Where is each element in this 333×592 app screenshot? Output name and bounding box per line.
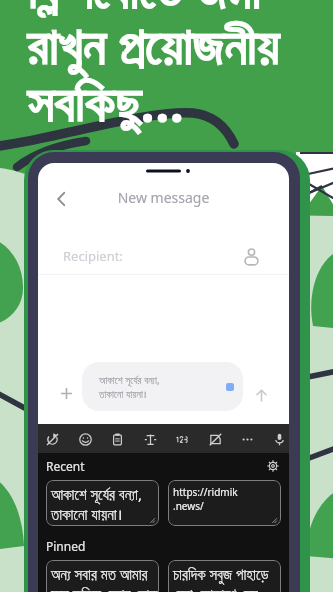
button[interactable]: Recipient: bbox=[38, 243, 289, 269]
staticText: অন্য সবার মত আমার bbox=[51, 564, 148, 584]
button[interactable]: Clipboard settings bbox=[266, 459, 280, 473]
staticText: New message bbox=[38, 188, 289, 207]
button[interactable]: https://ridmik bbox=[168, 480, 281, 526]
staticText: Recipient: bbox=[63, 247, 244, 265]
staticText: তাকানো যায়না। bbox=[51, 504, 123, 524]
button[interactable]: More options bbox=[234, 426, 260, 452]
other: Choose contact bbox=[244, 248, 259, 265]
button[interactable]: Clipboard history bbox=[39, 426, 65, 452]
staticText: আকাশে সূর্যের বন্যা, bbox=[51, 484, 142, 504]
button[interactable]: Numbers bbox=[169, 426, 195, 452]
button[interactable]: আকাশে সূর্যের বন্যা, bbox=[82, 362, 243, 411]
staticText: চারদিক সবুজ পাহাড়ে bbox=[173, 564, 269, 584]
staticText: Pinned bbox=[46, 538, 86, 554]
button[interactable]: আকাশে সূর্যের বন্যা, bbox=[46, 480, 159, 526]
staticText: ঘেরা, আকাশে মেঘ bbox=[173, 584, 258, 592]
staticText: ক্লিপবোর্ডে জমা রাখুন প্রয়োজনীয় সবকিছু… bbox=[27, 0, 279, 137]
staticText: Recent bbox=[46, 458, 266, 474]
button[interactable]: Stickers bbox=[202, 426, 228, 452]
staticText: তাকানো যায়না। bbox=[99, 387, 147, 401]
button[interactable]: Emoji bbox=[72, 426, 98, 452]
button[interactable]: Send bbox=[251, 385, 272, 406]
button[interactable]: অন্য সবার মত আমার bbox=[46, 560, 159, 592]
staticText: .news/ bbox=[173, 499, 204, 513]
button[interactable]: Add attachment bbox=[56, 383, 77, 404]
button[interactable]: Back bbox=[38, 185, 84, 212]
button[interactable]: Clipboard bbox=[104, 426, 130, 452]
staticText: https://ridmik bbox=[173, 485, 238, 499]
button[interactable]: Text editing bbox=[137, 426, 163, 452]
staticText: মনে করিয়ে দেবার লোক bbox=[51, 584, 158, 592]
staticText: আকাশে সূর্যের বন্যা, bbox=[99, 373, 160, 387]
button[interactable]: Voice input bbox=[266, 426, 289, 452]
button[interactable]: চারদিক সবুজ পাহাড়ে bbox=[168, 560, 281, 592]
